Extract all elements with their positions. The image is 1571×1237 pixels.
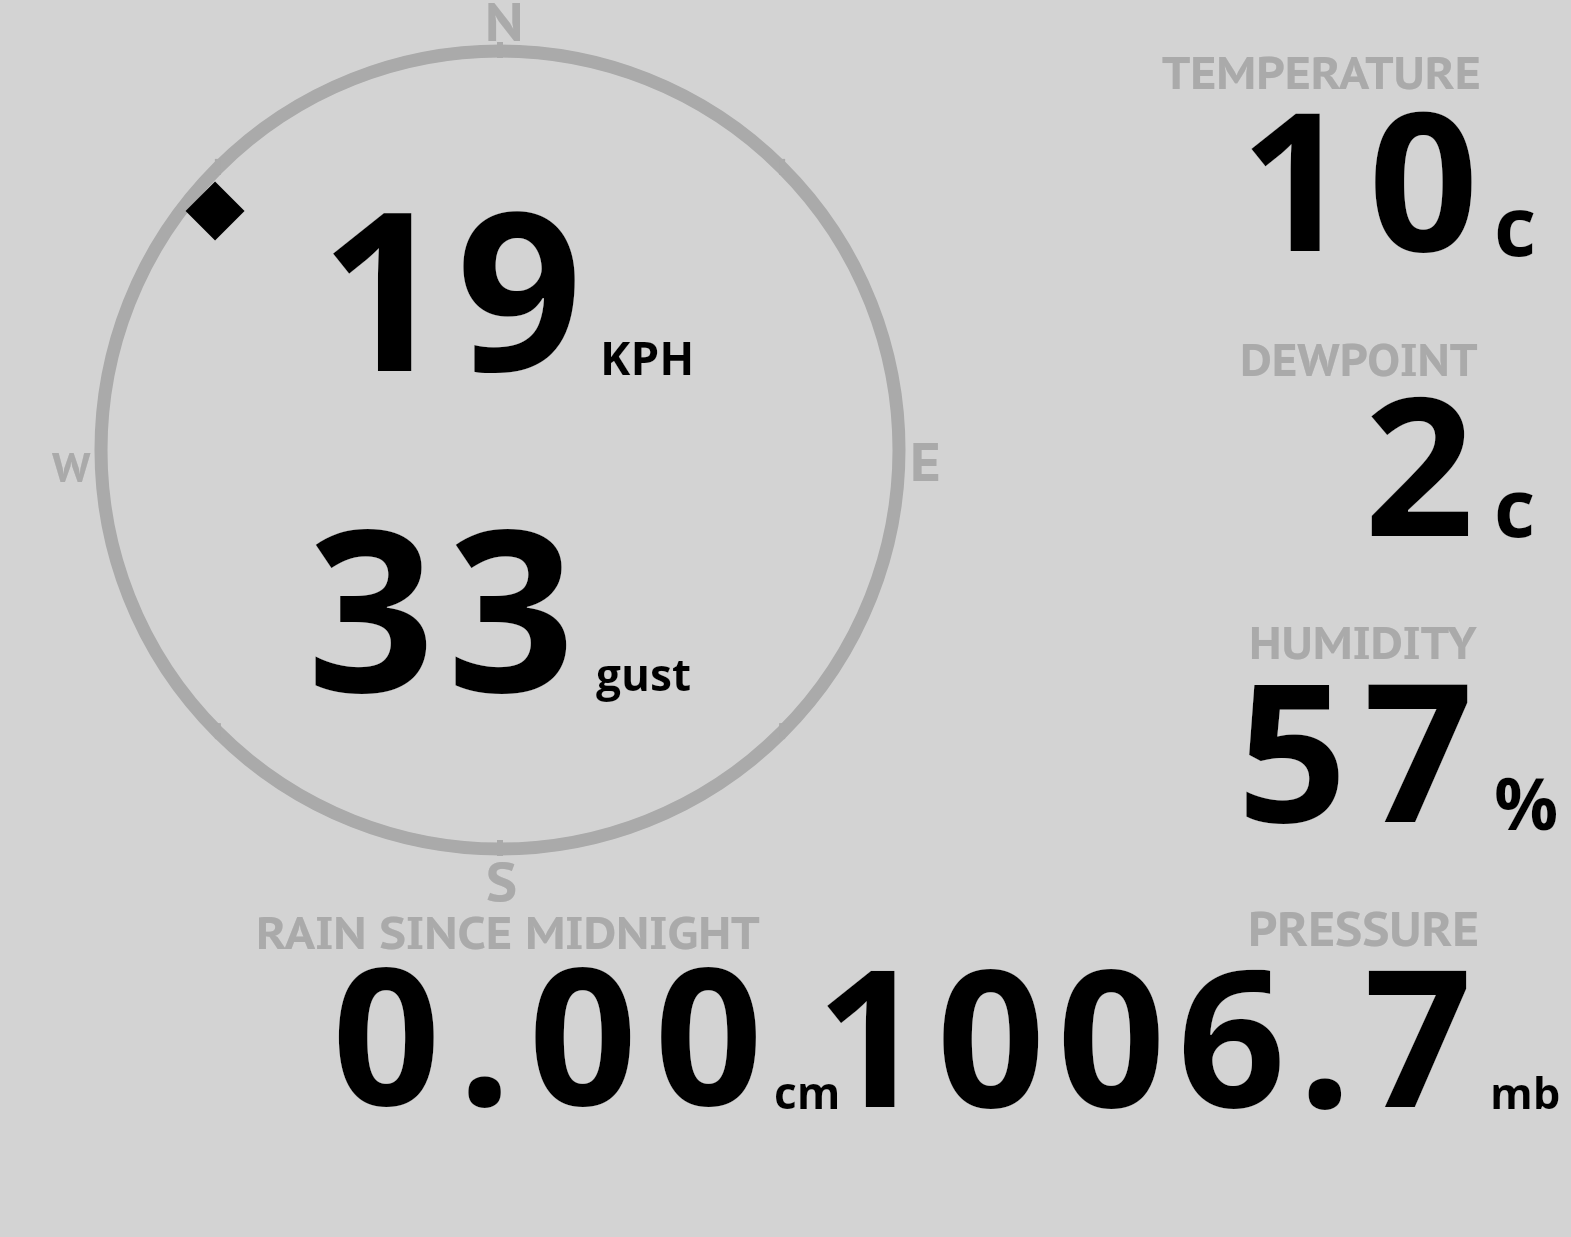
staticText: 1006.7: [816, 904, 1485, 1163]
staticText: HUMIDITY: [1249, 612, 1477, 672]
staticText: gust: [596, 644, 692, 704]
staticText: 33: [307, 453, 588, 758]
staticText: PRESSURE: [1248, 898, 1480, 959]
staticText: W: [52, 440, 91, 493]
staticText: KPH: [600, 326, 695, 388]
staticText: cm: [774, 1062, 841, 1122]
staticText: c: [1494, 451, 1536, 560]
staticText: N: [485, 0, 524, 56]
staticText: %: [1494, 754, 1559, 851]
staticText: 2: [1364, 330, 1493, 593]
staticText: 10: [1240, 45, 1497, 308]
staticText: S: [486, 846, 518, 916]
staticText: 57: [1237, 616, 1490, 879]
other: Wind direction compass: [0, 0, 1571, 1237]
staticText: 0.00: [332, 902, 780, 1161]
staticText: 19: [320, 135, 593, 436]
staticText: mb: [1490, 1062, 1561, 1121]
staticText: c: [1494, 168, 1537, 280]
staticText: DEWPOINT: [1240, 330, 1478, 388]
staticText: TEMPERATURE: [1162, 42, 1481, 102]
staticText: E: [910, 426, 941, 496]
staticText: RAIN SINCE MIDNIGHT: [256, 902, 760, 962]
